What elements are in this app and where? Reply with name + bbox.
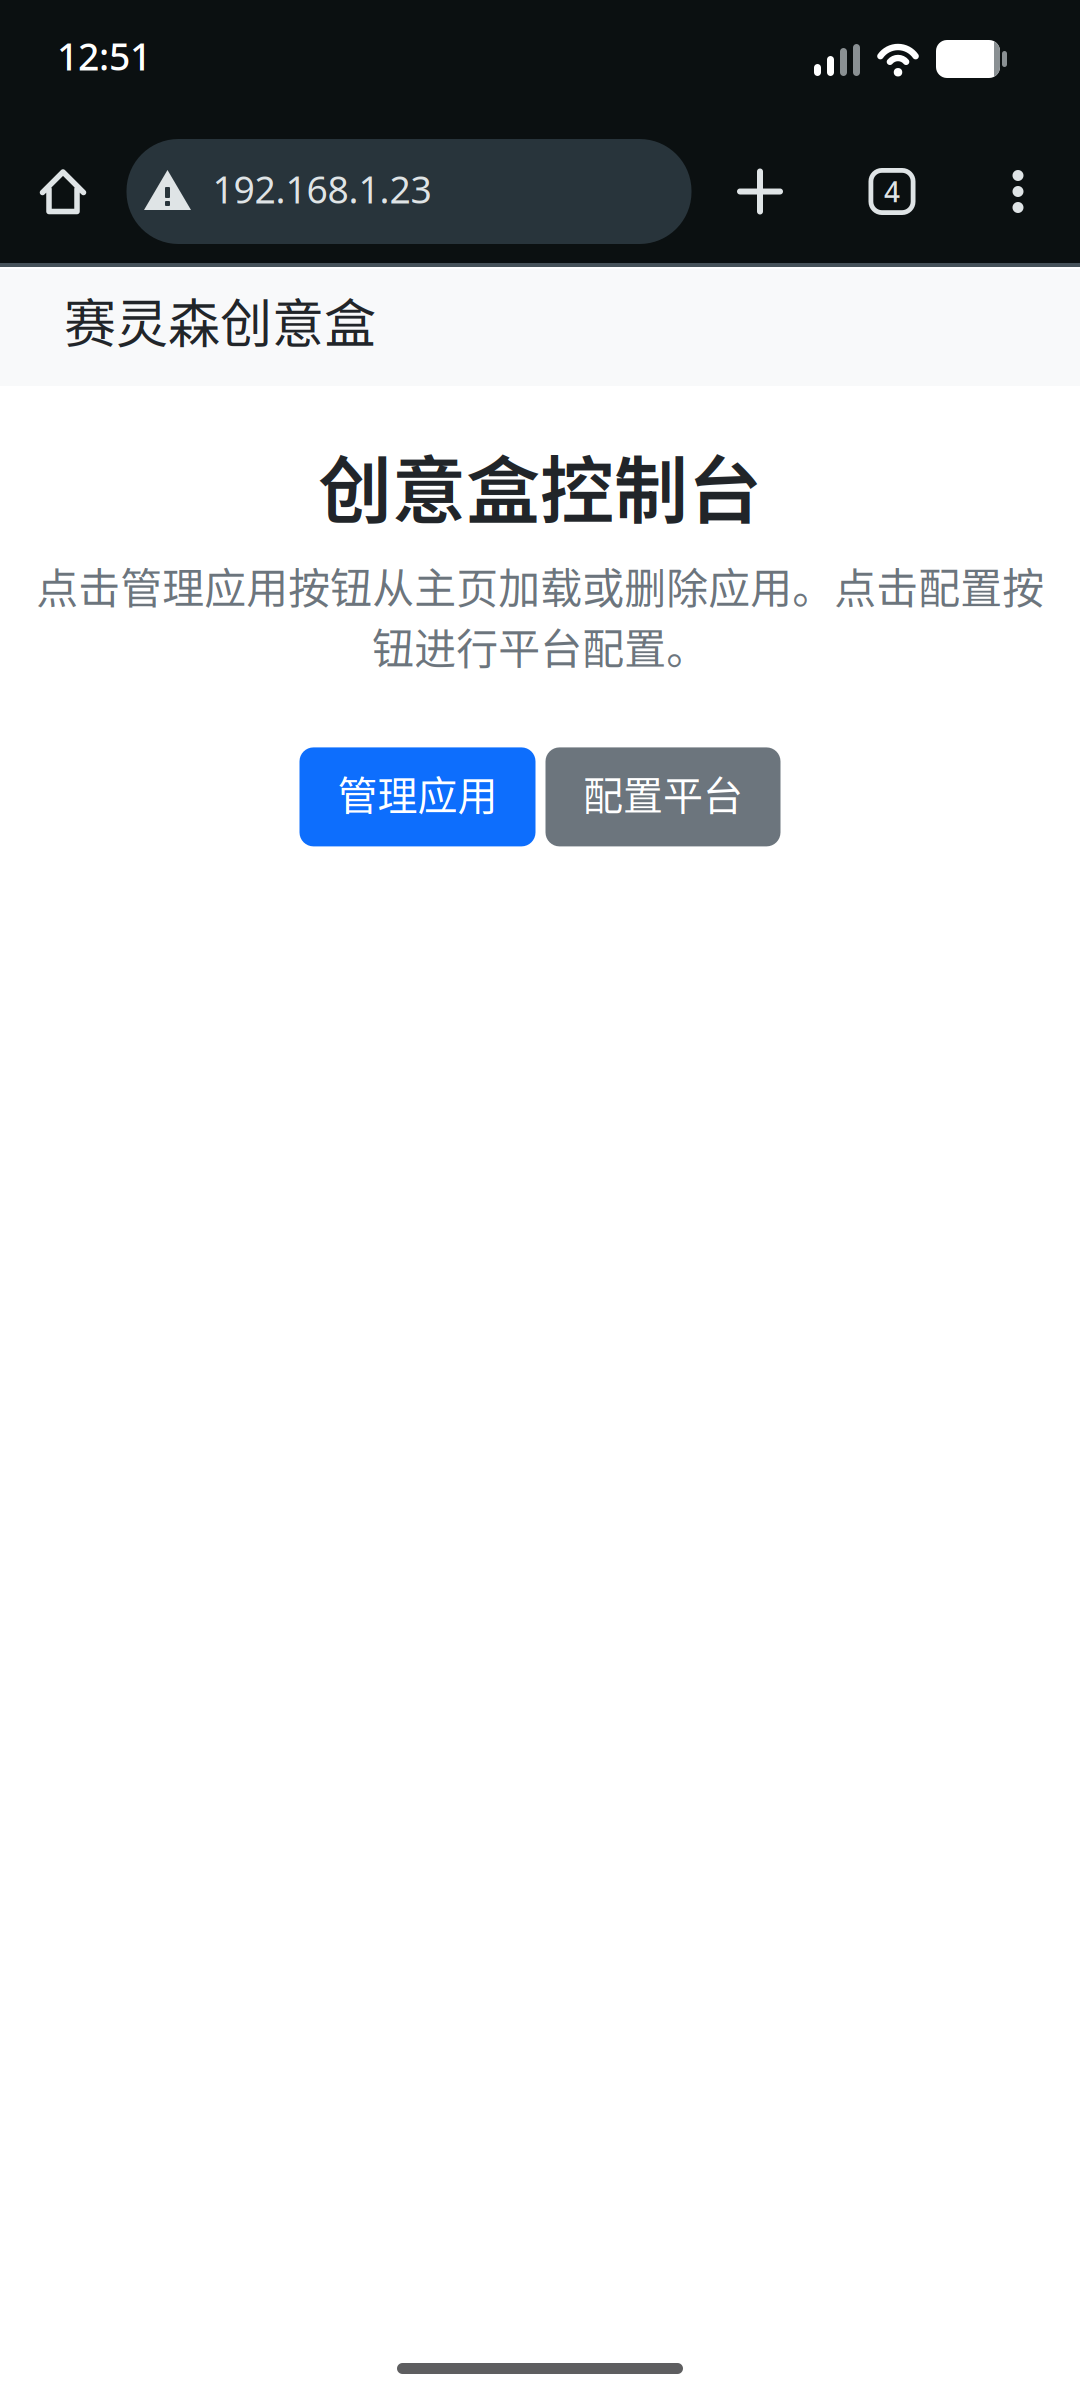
button[interactable]: 配置平台 [545, 747, 780, 846]
staticText: 4 [884, 172, 900, 210]
staticText: 配置平台 [583, 764, 743, 822]
staticText: 12:51 [57, 31, 151, 81]
button[interactable]: More options [955, 139, 1080, 243]
button[interactable]: Tabs [828, 139, 955, 243]
button[interactable]: New tab [691, 139, 828, 243]
button[interactable]: Home [19, 139, 106, 243]
button[interactable]: 管理应用 [299, 747, 535, 846]
button[interactable]: 192.168.1.23 [126, 139, 691, 244]
staticText: 赛灵森创意盒 [64, 282, 376, 358]
staticText: 点击管理应用按钮从主页加载或删除应用。点击配置按钮进行平台配置。 [36, 555, 1044, 676]
staticText: 管理应用 [337, 764, 497, 822]
staticText: 创意盒控制台 [318, 432, 762, 539]
staticText: 192.168.1.23 [212, 164, 431, 214]
